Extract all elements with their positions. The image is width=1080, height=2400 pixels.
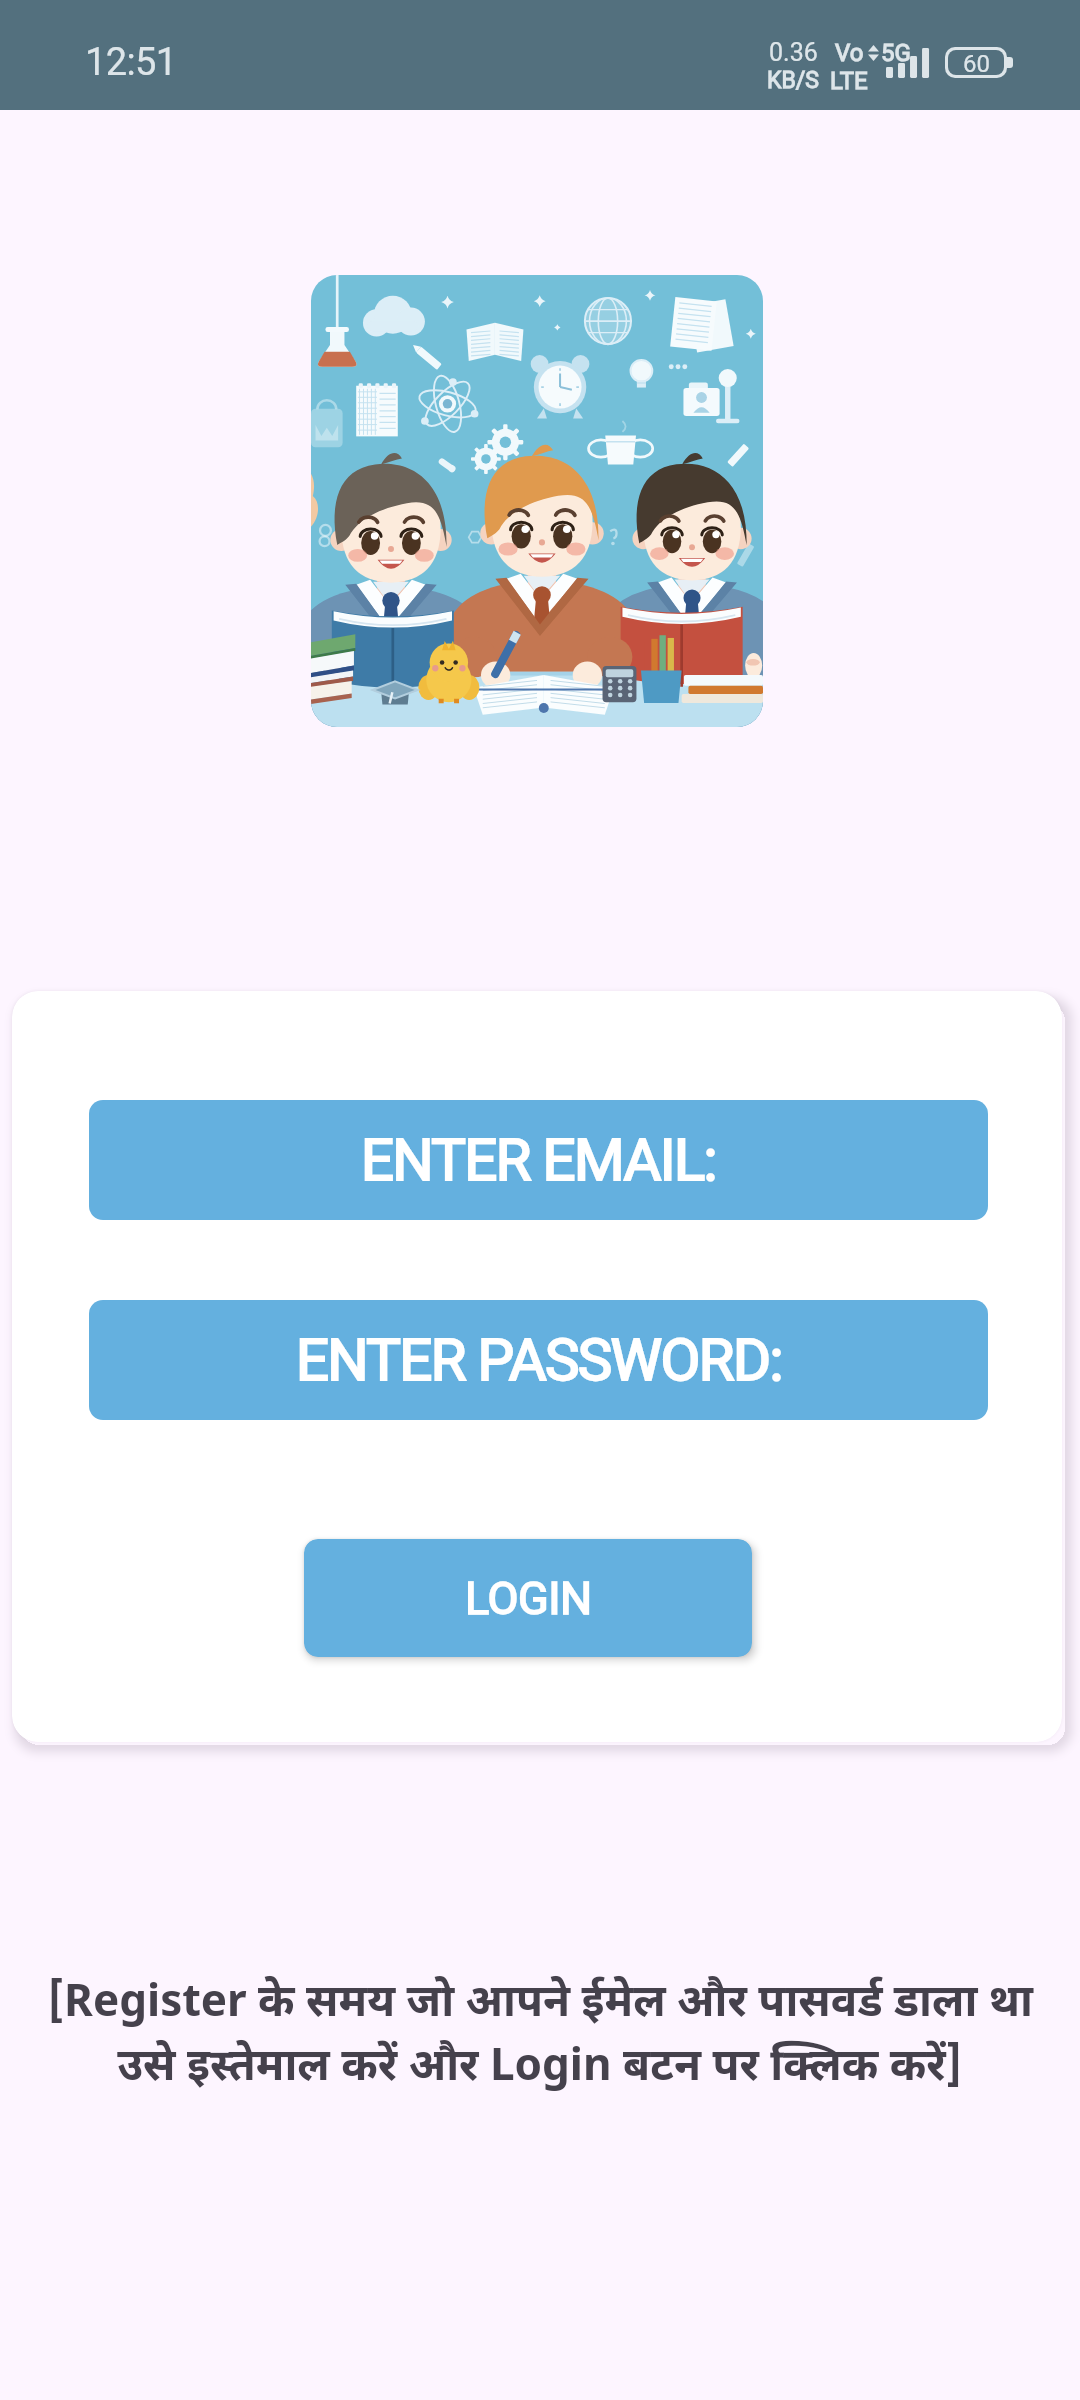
staticText: 60 — [963, 50, 990, 75]
staticText: ENTER PASSWORD: — [296, 1326, 782, 1394]
staticText: LOGIN — [465, 1572, 592, 1625]
staticText: KB/S — [767, 67, 819, 94]
other: Students studying illustration — [311, 275, 763, 727]
button[interactable]: ENTER PASSWORD: — [89, 1300, 988, 1420]
staticText: [Register के समय जो आपने ईमेल और पासवर्ड… — [47, 1977, 1033, 2098]
staticText: ENTER EMAIL: — [361, 1126, 717, 1194]
staticText: Vo — [835, 39, 864, 67]
button[interactable]: ENTER EMAIL: — [89, 1100, 988, 1220]
staticText: 5G — [881, 39, 911, 67]
staticText: LTE — [830, 67, 868, 95]
staticText: 12:51 — [85, 40, 177, 85]
staticText: 0.36 — [769, 38, 818, 67]
button[interactable]: LOGIN — [304, 1539, 752, 1657]
